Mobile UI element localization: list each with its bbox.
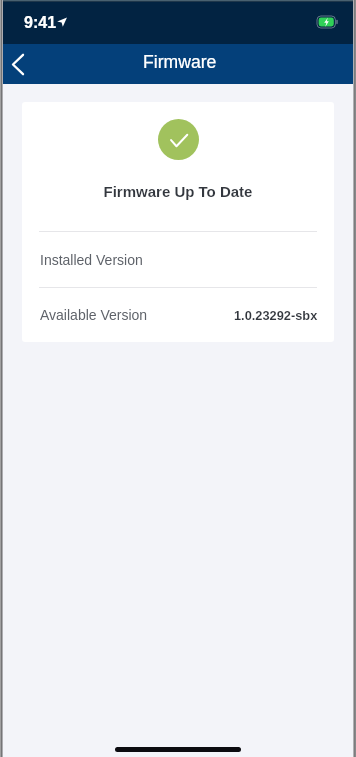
button[interactable]: Back [0, 44, 40, 84]
staticText: 1.0.23292-sbx [234, 308, 318, 322]
staticText: Firmware [143, 52, 217, 72]
staticText: 9:41 [24, 14, 57, 32]
button[interactable]: Available Version [22, 288, 334, 342]
staticText: Installed Version [40, 252, 143, 268]
button[interactable]: Installed Version [22, 232, 334, 287]
staticText: Firmware Up To Date [22, 183, 334, 200]
staticText: Available Version [40, 307, 148, 323]
